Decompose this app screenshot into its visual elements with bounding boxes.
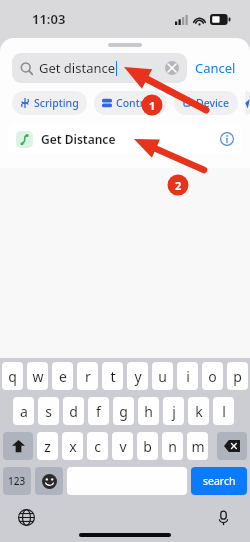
staticText: Device xyxy=(196,96,230,110)
staticText: u xyxy=(158,367,167,386)
button[interactable]: Controls xyxy=(94,91,167,115)
button[interactable]: y xyxy=(127,362,148,390)
button[interactable]: Emoji xyxy=(35,467,63,495)
button[interactable]: Info xyxy=(220,132,234,146)
button[interactable]: d xyxy=(63,397,84,425)
button[interactable]: u xyxy=(152,362,173,390)
button[interactable]: g xyxy=(113,397,134,425)
button[interactable]: h xyxy=(138,397,159,425)
button[interactable]: i xyxy=(177,362,198,390)
button[interactable]: t xyxy=(102,362,123,390)
staticText: s xyxy=(45,402,52,421)
button[interactable]: j xyxy=(163,397,184,425)
staticText: p xyxy=(233,367,242,386)
button[interactable]: w xyxy=(27,362,48,390)
staticText: 1 xyxy=(149,98,156,113)
staticText: d xyxy=(69,402,78,421)
staticText: Controls xyxy=(116,96,159,110)
staticText: 2 xyxy=(175,178,182,193)
button[interactable]: search xyxy=(191,467,247,495)
button[interactable]: z xyxy=(37,432,58,460)
button[interactable]: Device xyxy=(174,91,238,115)
button[interactable]: r xyxy=(77,362,98,390)
button[interactable]: Dictate xyxy=(215,509,232,526)
staticText: z xyxy=(44,437,51,456)
staticText: 123 xyxy=(8,474,26,488)
button[interactable]: More xyxy=(245,91,250,115)
button[interactable]: e xyxy=(52,362,73,390)
staticText: y xyxy=(134,367,142,386)
staticText: Get distance xyxy=(39,59,116,77)
staticText: 11:03 xyxy=(32,10,66,28)
staticText: b xyxy=(143,437,152,456)
button[interactable]: q xyxy=(2,362,23,390)
button[interactable]: s xyxy=(38,397,59,425)
button[interactable]: k xyxy=(188,397,209,425)
button[interactable]: Switch keyboard xyxy=(18,509,35,526)
staticText: Scripting xyxy=(34,96,79,110)
staticText: Get Distance xyxy=(41,131,116,147)
button[interactable]: Numbers xyxy=(3,467,31,495)
staticText: i xyxy=(186,367,190,386)
staticText: o xyxy=(208,367,217,386)
button[interactable]: a xyxy=(13,397,34,425)
staticText: q xyxy=(8,367,17,386)
button[interactable]: b xyxy=(137,432,158,460)
button[interactable]: Shift xyxy=(3,432,33,460)
button[interactable]: x xyxy=(62,432,83,460)
staticText: t xyxy=(110,367,116,386)
staticText: Cancel xyxy=(195,59,236,77)
button[interactable]: v xyxy=(112,432,133,460)
button[interactable]: n xyxy=(162,432,183,460)
button[interactable]: p xyxy=(227,362,248,390)
button[interactable]: Cancel xyxy=(187,59,238,77)
button[interactable]: f xyxy=(88,397,109,425)
staticText: g xyxy=(119,402,128,421)
staticText: h xyxy=(144,402,153,421)
button[interactable]: o xyxy=(202,362,223,390)
button[interactable]: Get distance xyxy=(12,53,187,83)
other: Clear xyxy=(165,61,179,75)
staticText: e xyxy=(59,367,67,386)
button[interactable]: Get Distance xyxy=(8,124,242,154)
button[interactable]: Scripting xyxy=(12,91,87,115)
staticText: r xyxy=(85,367,91,386)
staticText: j xyxy=(172,402,176,421)
staticText: c xyxy=(94,437,101,456)
staticText: f xyxy=(96,402,101,421)
staticText: m xyxy=(191,437,205,456)
staticText: k xyxy=(195,402,203,421)
button[interactable]: c xyxy=(87,432,108,460)
staticText: a xyxy=(20,402,28,421)
staticText: w xyxy=(32,367,44,386)
staticText: n xyxy=(168,437,177,456)
staticText: x xyxy=(69,437,77,456)
staticText: l xyxy=(222,402,226,421)
button[interactable]: Backspace xyxy=(217,432,247,460)
staticText: v xyxy=(119,437,127,456)
button[interactable]: m xyxy=(187,432,208,460)
staticText: search xyxy=(203,474,236,488)
button[interactable]: l xyxy=(213,397,234,425)
